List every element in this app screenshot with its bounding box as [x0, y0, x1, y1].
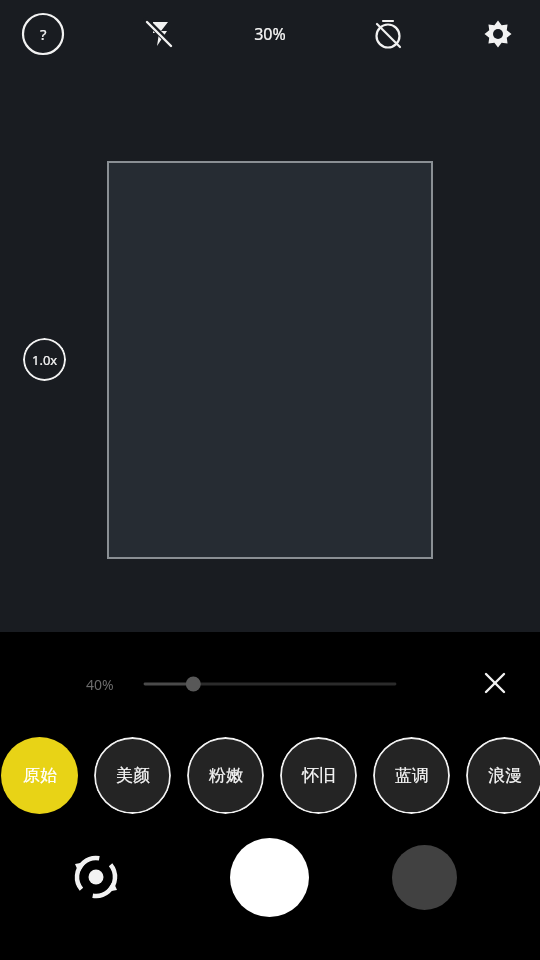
staticText: 怀旧	[302, 765, 336, 786]
button[interactable]: Flash off	[137, 11, 183, 57]
button[interactable]: 30%	[240, 11, 300, 57]
button[interactable]: 浪漫	[466, 737, 540, 814]
button[interactable]: Shutter	[230, 838, 309, 917]
button[interactable]: Switch camera	[66, 847, 126, 907]
button[interactable]: Help	[20, 11, 66, 57]
staticText: 40%	[86, 675, 114, 694]
button[interactable]: 怀旧	[280, 737, 357, 814]
staticText: 粉嫩	[209, 765, 243, 786]
button[interactable]	[140, 670, 400, 698]
staticText: 30%	[254, 23, 286, 45]
button[interactable]: Close	[472, 660, 518, 706]
button[interactable]: 1.0x	[23, 338, 66, 381]
staticText: ?	[40, 24, 47, 44]
staticText: 原始	[23, 765, 57, 786]
button[interactable]: Gallery	[392, 845, 457, 910]
staticText: 1.0x	[32, 351, 58, 369]
button[interactable]: 美颜	[94, 737, 171, 814]
button[interactable]: 粉嫩	[187, 737, 264, 814]
staticText: 美颜	[116, 765, 150, 786]
button[interactable]: 原始	[1, 737, 78, 814]
button[interactable]: Timer off	[365, 11, 411, 57]
button[interactable]: Settings	[475, 11, 521, 57]
button[interactable]: 蓝调	[373, 737, 450, 814]
staticText: 浪漫	[488, 765, 522, 786]
staticText: 蓝调	[395, 765, 429, 786]
